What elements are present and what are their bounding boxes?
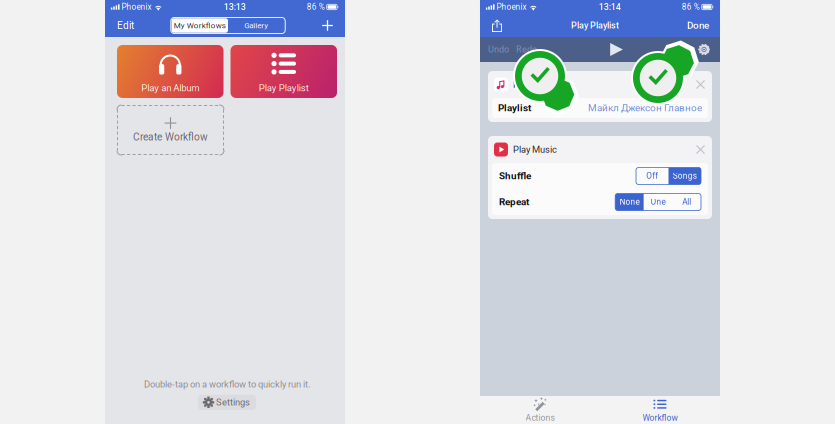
- button[interactable]: None: [615, 193, 644, 210]
- staticText: All: [682, 197, 691, 207]
- staticText: Songs: [673, 171, 697, 181]
- staticText: Double-tap on a workflow to quickly run …: [144, 379, 310, 390]
- button[interactable]: One: [644, 193, 672, 210]
- staticText: Play Playlist: [571, 20, 619, 31]
- staticText: 13:13: [224, 2, 246, 12]
- staticText: Redo: [516, 44, 537, 55]
- button[interactable]: Undo: [488, 40, 509, 59]
- button[interactable]: Share: [489, 17, 505, 34]
- staticText: Off: [646, 171, 658, 181]
- button[interactable]: Workflow: [600, 393, 720, 424]
- staticText: Phoenix: [121, 2, 151, 12]
- button[interactable]: Play Playlist: [230, 45, 337, 98]
- staticText: None: [619, 197, 639, 207]
- staticText: Gallery: [244, 21, 268, 30]
- button[interactable]: Remove action: [695, 79, 706, 90]
- button[interactable]: Create Workflow: [117, 105, 224, 155]
- staticText: Undo: [488, 44, 509, 55]
- staticText: 86 %: [307, 2, 325, 12]
- staticText: Edit: [117, 20, 134, 31]
- staticText: Workflow: [642, 413, 677, 423]
- staticText: Play: [513, 79, 530, 90]
- staticText: Play an Album: [141, 82, 199, 93]
- button[interactable]: Gallery: [228, 18, 284, 33]
- button[interactable]: Remove Play Music action: [695, 144, 706, 155]
- staticText: Repeat: [499, 196, 529, 208]
- button[interactable]: Playlist: [492, 98, 708, 118]
- staticText: Майкл Джексон Главное: [588, 102, 702, 114]
- staticText: Playlist: [498, 102, 531, 114]
- staticText: Create Workflow: [133, 131, 208, 143]
- button[interactable]: Settings: [198, 395, 256, 410]
- staticText: 13:14: [599, 2, 621, 12]
- button[interactable]: Actions: [480, 393, 600, 424]
- staticText: Phoenix: [496, 2, 526, 12]
- staticText: Play Music: [513, 144, 557, 155]
- staticText: Done: [687, 20, 709, 31]
- staticText: Settings: [216, 397, 250, 408]
- staticText: Play Playlist: [259, 82, 309, 93]
- staticText: My Workflows: [174, 21, 226, 30]
- staticText: 86 %: [682, 2, 700, 12]
- staticText: Shuffle: [499, 170, 531, 182]
- button[interactable]: Run workflow: [607, 40, 626, 59]
- button[interactable]: Edit: [114, 17, 137, 34]
- button[interactable]: Done: [685, 17, 711, 34]
- button[interactable]: Redo: [509, 40, 537, 59]
- button[interactable]: New workflow: [319, 17, 336, 34]
- button[interactable]: All: [672, 193, 701, 210]
- staticText: One: [651, 197, 666, 207]
- button[interactable]: My Workflows: [172, 18, 228, 33]
- button[interactable]: Songs: [668, 167, 701, 184]
- button[interactable]: Play an Album: [117, 45, 223, 98]
- button[interactable]: Off: [636, 167, 668, 184]
- staticText: Actions: [525, 413, 554, 423]
- button[interactable]: Workflow settings: [696, 41, 712, 57]
